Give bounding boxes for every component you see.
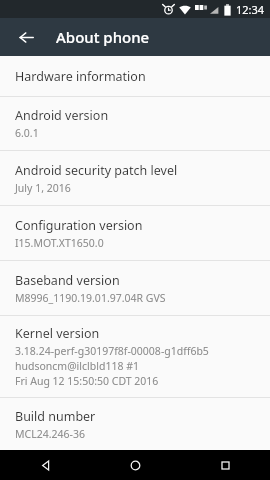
staticText: Hardware information — [15, 68, 146, 85]
staticText: M8996_1190.19.01.97.04R GVS — [15, 291, 166, 305]
button[interactable]: Configuration version — [0, 206, 270, 260]
staticText: Android security patch level — [15, 162, 178, 179]
button[interactable]: Android security patch level — [0, 151, 270, 205]
button[interactable]: Back — [0, 450, 90, 480]
button[interactable]: Recent apps — [180, 450, 270, 480]
staticText: Baseband version — [15, 272, 120, 289]
staticText: July 1, 2016 — [15, 181, 71, 195]
staticText: About phone — [56, 27, 150, 47]
button[interactable]: Android version — [0, 97, 270, 150]
staticText: hudsoncm@ilclbld118 #1 — [15, 359, 139, 373]
button[interactable]: Baseband version — [0, 261, 270, 315]
button[interactable]: Navigate up — [12, 23, 40, 51]
staticText: MCL24.246-36 — [15, 427, 85, 441]
button[interactable]: Home — [90, 450, 180, 480]
staticText: Android version — [15, 107, 109, 124]
staticText: 12:34 — [236, 2, 265, 17]
button[interactable]: Hardware information — [0, 56, 270, 96]
staticText: I15.MOT.XT1650.0 — [15, 236, 104, 250]
staticText: 3.18.24-perf-g30197f8f-00008-g1dff6b5 — [15, 344, 209, 358]
staticText: Build number — [15, 408, 96, 425]
staticText: Configuration version — [15, 217, 143, 234]
button[interactable]: Build number — [0, 398, 270, 450]
staticText: 6.0.1 — [15, 126, 39, 140]
button[interactable]: Kernel version — [0, 316, 270, 397]
staticText: Kernel version — [15, 325, 100, 342]
staticText: Fri Aug 12 15:50:50 CDT 2016 — [15, 374, 159, 388]
